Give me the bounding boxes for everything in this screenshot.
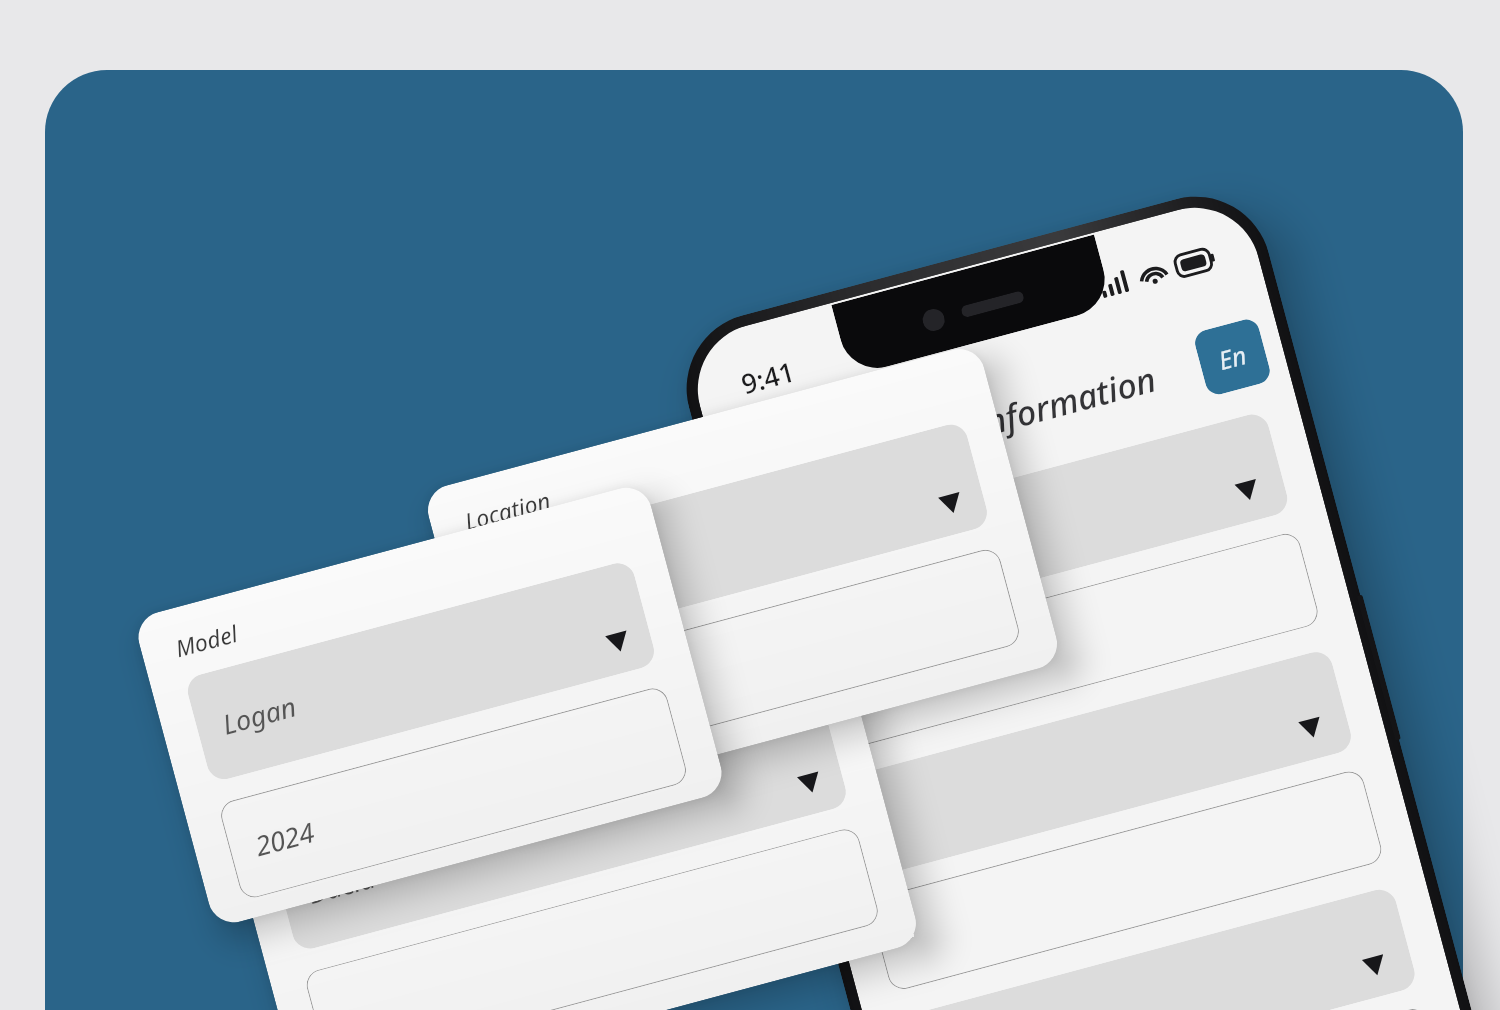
staticText: Vehicle information — [858, 355, 1161, 478]
button[interactable] — [835, 648, 1355, 881]
staticText: Location — [461, 484, 554, 536]
button[interactable] — [804, 530, 1321, 755]
button[interactable] — [772, 410, 1291, 643]
button[interactable]: Back — [743, 442, 816, 515]
button[interactable]: Location — [422, 343, 1063, 811]
button[interactable]: Brand — [218, 623, 922, 1010]
staticText: 9:41 — [737, 352, 799, 402]
staticText: Agadir — [508, 559, 595, 616]
button[interactable]: Model — [133, 482, 727, 928]
staticText: Brand — [257, 786, 326, 833]
button[interactable] — [899, 886, 1419, 1010]
staticText: Model — [172, 617, 241, 663]
button[interactable]: Logan — [184, 559, 658, 783]
button[interactable] — [867, 768, 1385, 993]
button[interactable]: 2024 — [217, 685, 690, 901]
staticText: Logan — [218, 687, 300, 743]
staticText: Dacia — [304, 859, 379, 912]
button[interactable]: En — [1192, 316, 1273, 397]
button[interactable] — [931, 1005, 1449, 1010]
button[interactable]: Dacia — [269, 700, 850, 953]
staticText: 2024 — [251, 813, 318, 864]
button[interactable]: Agadir — [473, 421, 991, 656]
button[interactable] — [303, 826, 881, 1010]
staticText: En — [1214, 337, 1250, 377]
button[interactable] — [507, 546, 1023, 774]
